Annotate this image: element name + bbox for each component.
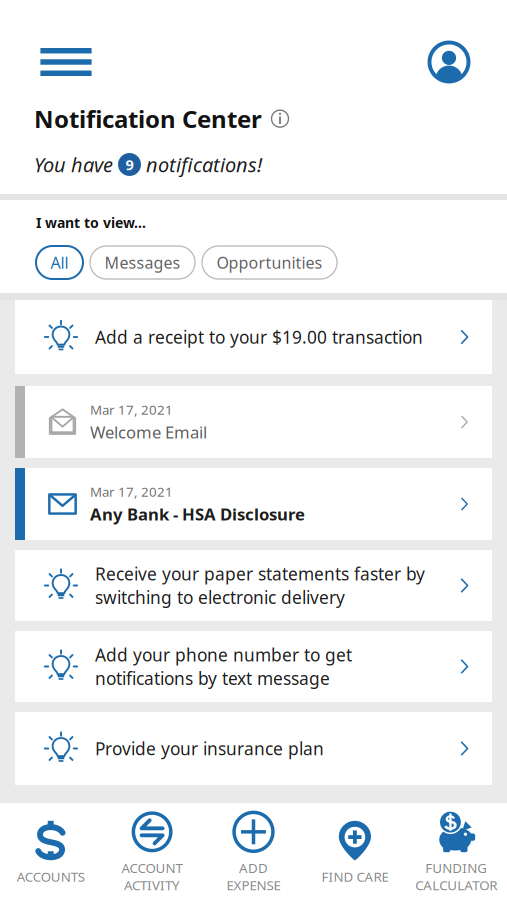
staticText: CALCULATOR (415, 876, 497, 894)
staticText: Provide your insurance plan (95, 737, 324, 760)
staticText: Opportunities (216, 252, 322, 273)
staticText: Any Bank - HSA Disclosure (90, 503, 305, 525)
button[interactable]: Provide your insurance plan (15, 712, 492, 785)
staticText: I want to view... (36, 213, 146, 232)
staticText: notifications! (141, 151, 262, 178)
button[interactable]: Messages (90, 246, 195, 279)
staticText: FIND CARE (321, 867, 388, 886)
button[interactable]: Add a receipt to your $19.00 transaction (15, 300, 492, 374)
staticText: Add your phone number to get notificatio… (95, 643, 352, 690)
staticText: ACCOUNTS (17, 867, 85, 886)
staticText: ACTIVITY (124, 876, 180, 894)
button[interactable]: Receive your paper statements faster by … (15, 550, 492, 621)
staticText: ACCOUNT (122, 859, 183, 877)
button[interactable]: Accounts (0, 803, 101, 900)
staticText: Mar 17, 2021 (90, 401, 173, 419)
button[interactable]: Funding Calculator (406, 803, 507, 900)
staticText: Welcome Email (90, 421, 207, 443)
button[interactable]: Opportunities (202, 246, 337, 279)
staticText: FUNDING (425, 859, 487, 877)
button[interactable]: Menu (34, 36, 98, 88)
staticText: ADD (239, 859, 268, 877)
staticText: Add a receipt to your $19.00 transaction (95, 325, 423, 349)
button[interactable]: Add your phone number to get notificatio… (15, 631, 492, 702)
staticText: Messages (104, 252, 180, 273)
staticText: Notification Center (34, 102, 262, 135)
button[interactable]: Profile (419, 36, 479, 88)
staticText: EXPENSE (226, 876, 280, 894)
staticText: Mar 17, 2021 (90, 483, 173, 501)
button[interactable]: Find Care (304, 803, 406, 900)
button[interactable]: Mar 17, 2021 (15, 386, 492, 458)
button[interactable]: Add Expense (203, 803, 304, 900)
button[interactable]: Account Activity (101, 803, 203, 900)
staticText: You have (34, 151, 118, 178)
button[interactable]: All (36, 246, 83, 279)
staticText: 9 (125, 154, 133, 174)
staticText: All (50, 252, 68, 273)
staticText: Receive your paper statements faster by … (95, 562, 425, 609)
button[interactable]: Mar 17, 2021 (15, 468, 492, 540)
